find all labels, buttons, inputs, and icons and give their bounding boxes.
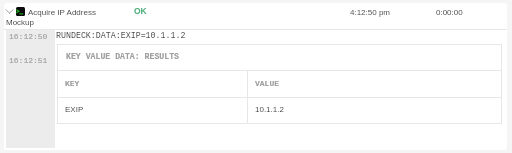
button[interactable]: Collapse step [5, 8, 14, 15]
staticText: Acquire IP Address [28, 8, 96, 17]
staticText: VALUE [255, 79, 280, 88]
staticText: 4:12:50 pm [350, 8, 391, 17]
staticText: OK [134, 6, 147, 15]
staticText: KEY VALUE DATA: RESULTS [66, 52, 180, 61]
button[interactable] [4, 3, 507, 29]
staticText: KEY [65, 79, 80, 88]
staticText: RUNDECK:DATA:EXIP=10.1.1.2 [56, 31, 186, 40]
staticText: 0:00:00 [436, 8, 463, 17]
staticText: EXIP [65, 105, 84, 114]
staticText: 16:12:50 [9, 32, 48, 41]
staticText: 16:12:51 [9, 56, 48, 65]
staticText: 10.1.1.2 [255, 105, 284, 114]
staticText: Mockup [6, 18, 35, 27]
